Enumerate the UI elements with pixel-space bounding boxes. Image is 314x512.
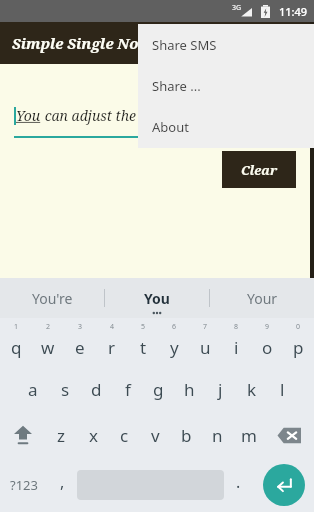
staticText: 7 <box>203 322 208 332</box>
button[interactable]: Backspace <box>264 412 314 458</box>
staticText: 5 <box>141 322 146 332</box>
button[interactable]: g <box>143 366 174 412</box>
button[interactable]: . <box>224 458 253 512</box>
staticText: 6 <box>172 322 177 332</box>
staticText: i <box>234 336 239 359</box>
button[interactable]: s <box>49 366 81 412</box>
staticText: Clear <box>241 161 278 179</box>
staticText: , <box>60 471 65 493</box>
staticText: d <box>91 378 102 401</box>
staticText: c <box>120 424 129 447</box>
button[interactable]: j <box>205 366 236 412</box>
staticText: You <box>144 289 170 308</box>
staticText: l <box>280 378 285 401</box>
staticText: You <box>16 106 41 125</box>
staticText: z <box>57 424 65 447</box>
button[interactable]: 3 <box>64 318 96 366</box>
button[interactable]: Shift <box>0 412 45 458</box>
staticText: r <box>108 336 116 359</box>
staticText: 9 <box>265 322 270 332</box>
staticText: 4 <box>110 322 115 332</box>
staticText: 1 <box>14 322 19 332</box>
staticText: Your <box>247 289 278 308</box>
staticText: Share SMS <box>152 36 217 54</box>
staticText: e <box>75 336 85 359</box>
button[interactable]: 0 <box>283 318 314 366</box>
staticText: o <box>262 336 273 359</box>
button[interactable]: a <box>17 366 49 412</box>
button[interactable]: About <box>138 106 314 147</box>
button[interactable]: ?123 <box>0 458 48 512</box>
staticText: Simple Single Note <box>12 33 153 53</box>
button[interactable]: k <box>236 366 267 412</box>
staticText: 3G <box>232 3 242 13</box>
staticText: ?123 <box>10 476 38 494</box>
button[interactable]: 9 <box>252 318 283 366</box>
button[interactable]: h <box>174 366 205 412</box>
staticText: 2 <box>46 322 51 332</box>
staticText: p <box>293 336 304 359</box>
button[interactable]: f <box>112 366 143 412</box>
button[interactable]: 6 <box>159 318 190 366</box>
staticText: 11:49 <box>279 4 308 19</box>
button[interactable]: m <box>233 412 264 458</box>
staticText: . <box>236 471 241 493</box>
button[interactable]: Clear <box>222 151 296 188</box>
staticText: m <box>241 424 257 447</box>
staticText: s <box>61 378 70 401</box>
staticText: t <box>140 336 147 359</box>
button[interactable]: You're <box>0 278 104 318</box>
button[interactable]: 1 <box>0 318 32 366</box>
button[interactable]: 5 <box>128 318 159 366</box>
staticText: can adjust the <box>41 106 136 125</box>
button[interactable]: Enter <box>263 464 305 506</box>
button[interactable]: b <box>171 412 202 458</box>
button[interactable]: c <box>109 412 140 458</box>
staticText: 0 <box>296 322 301 332</box>
button[interactable]: x <box>77 412 109 458</box>
staticText: x <box>89 424 98 447</box>
button[interactable]: v <box>140 412 171 458</box>
staticText: a <box>28 378 38 401</box>
staticText: y <box>170 336 179 359</box>
staticText: 8 <box>234 322 239 332</box>
button[interactable]: n <box>202 412 233 458</box>
button[interactable]: Share SMS <box>138 24 314 65</box>
staticText: h <box>184 378 195 401</box>
staticText: v <box>151 424 160 447</box>
button[interactable]: 7 <box>190 318 221 366</box>
button[interactable]: l <box>267 366 298 412</box>
staticText: j <box>218 378 223 401</box>
staticText: 3 <box>78 322 83 332</box>
staticText: You're <box>32 289 73 308</box>
staticText: g <box>153 378 164 401</box>
button[interactable]: 4 <box>96 318 128 366</box>
staticText: b <box>181 424 192 447</box>
staticText: q <box>11 336 22 359</box>
staticText: About <box>152 118 189 136</box>
staticText: k <box>247 378 257 401</box>
button[interactable]: d <box>81 366 112 412</box>
button[interactable]: 8 <box>221 318 252 366</box>
button[interactable]: You <box>105 278 209 318</box>
staticText: f <box>125 378 131 401</box>
button[interactable]: z <box>45 412 77 458</box>
button[interactable]: Share ... <box>138 65 314 106</box>
staticText: w <box>41 336 55 359</box>
button[interactable]: Your <box>210 278 314 318</box>
staticText: Share ... <box>152 77 201 95</box>
staticText: u <box>200 336 211 359</box>
staticText: n <box>212 424 223 447</box>
button[interactable]: , <box>48 458 77 512</box>
button[interactable]: 2 <box>32 318 64 366</box>
